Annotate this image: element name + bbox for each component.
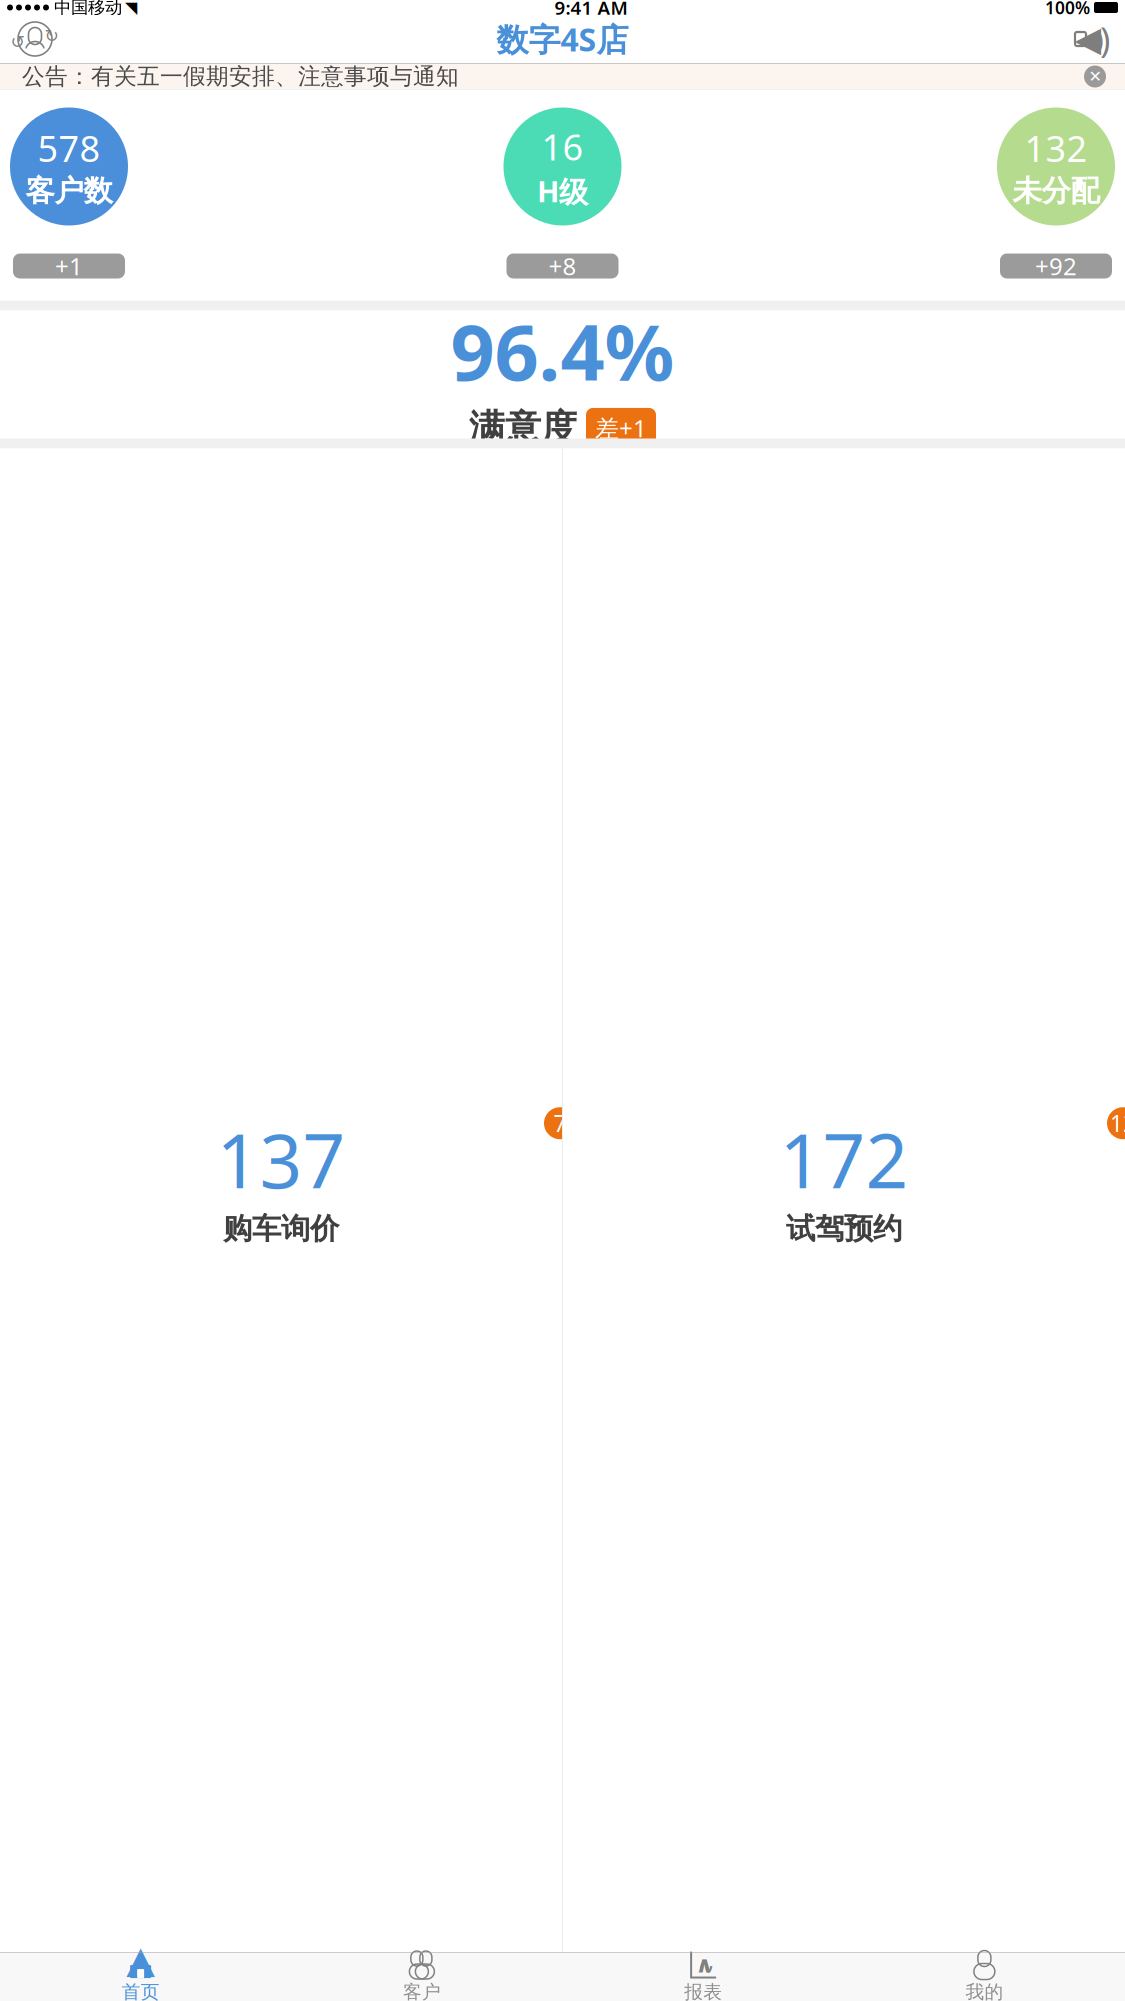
staticText: 9:41 AM [554,0,627,20]
staticText: ◀ [1074,19,1101,59]
button[interactable]: 公告 [1063,17,1117,61]
button[interactable]: ▲ [0,1945,281,2001]
button[interactable]: 切换用户 [8,17,62,61]
button[interactable]: +92 [1000,253,1112,278]
staticText: 中国移动 [54,0,122,18]
button[interactable]: 137 [0,448,562,1952]
staticText: 差+1 [595,412,647,444]
staticText: 客户数 [25,173,112,209]
staticText: 578 [37,124,100,172]
button[interactable]: 132 [997,107,1115,225]
button[interactable]: +1 [13,253,125,278]
button[interactable]: +8 [506,253,618,278]
button[interactable]: 客户 [281,1945,562,2001]
staticText: +92 [1035,250,1077,282]
staticText: ↺ [10,32,25,52]
staticText: 172 [779,1110,908,1209]
staticText: 公告：有关五一假期安排、注意事项与通知 [22,63,459,90]
staticText: 数字4S店 [496,18,628,60]
staticText: 137 [216,1110,345,1209]
staticText: ) [1096,22,1104,56]
staticText: ) [1100,16,1110,62]
staticText: 报表 [684,1980,722,2001]
staticText: 96.4% [450,299,674,402]
staticText: ✕ [1088,67,1101,86]
staticText: 首页 [122,1980,160,2001]
staticText: 7 [553,1108,566,1138]
staticText: ▲ [126,1938,155,1981]
staticText: 未分配 [1012,173,1099,209]
staticText: 满意度 [469,406,577,450]
staticText: +8 [548,250,576,282]
staticText: 100% [1045,0,1090,19]
staticText: ∧ [695,1952,713,1977]
button[interactable]: 96.4% [0,310,1125,438]
button[interactable]: 578 [10,107,128,225]
button[interactable]: 我的 [844,1945,1125,2001]
staticText: 客户 [403,1980,441,2001]
staticText: 16 [541,122,583,170]
button[interactable]: ∧ [562,1945,844,2001]
staticText: 我的 [965,1980,1003,2001]
staticText: ∿ [698,1955,715,1978]
staticText: 12 [1110,1108,1125,1138]
button[interactable]: 关闭公告 [1073,62,1117,90]
staticText: +1 [55,250,83,282]
staticText: ◥ [125,0,137,17]
staticText: 购车询价 [223,1211,339,1247]
staticText: ↻ [44,26,59,46]
button[interactable]: 16 [503,107,621,225]
staticText: 132 [1024,124,1087,172]
staticText: H级 [537,171,588,210]
button[interactable]: 172 [563,448,1125,1952]
staticText: 试驾预约 [786,1211,902,1247]
